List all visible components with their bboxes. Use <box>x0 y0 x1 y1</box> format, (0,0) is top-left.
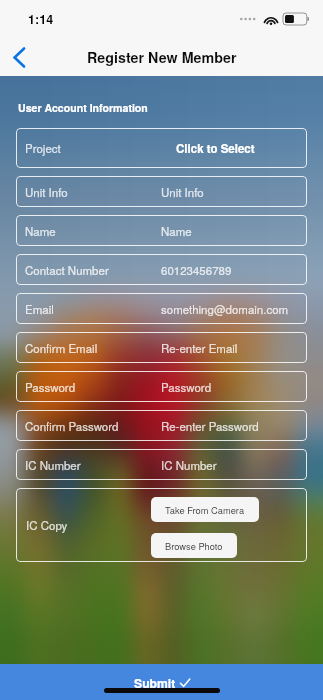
button[interactable]: Confirm Password <box>16 410 307 441</box>
button[interactable]: Password <box>16 371 307 402</box>
staticText: Name <box>161 223 192 239</box>
staticText: 1:14 <box>28 10 54 28</box>
staticText: Click to Select <box>176 140 255 156</box>
staticText: something@domain.com <box>161 301 289 317</box>
staticText: Re-enter Email <box>161 340 238 356</box>
staticText: Unit Info <box>161 184 204 200</box>
button[interactable]: Contact Number <box>16 254 307 285</box>
staticText: User Account Information <box>18 100 148 115</box>
staticText: Register New Member <box>87 47 237 67</box>
staticText: Contact Number <box>25 262 161 278</box>
staticText: 60123456789 <box>161 262 232 278</box>
staticText: Submit <box>134 674 176 691</box>
button[interactable]: IC Copy <box>16 488 307 562</box>
staticText: Project <box>25 140 161 156</box>
staticText: Re-enter Password <box>161 418 259 434</box>
button[interactable]: Name <box>16 215 307 246</box>
button[interactable]: Submit <box>0 664 323 700</box>
staticText: Browse Photo <box>165 539 223 552</box>
button[interactable]: Take From Camera <box>151 497 259 522</box>
button[interactable]: Unit Info <box>16 176 307 207</box>
staticText: Name <box>25 223 161 239</box>
button[interactable]: Email <box>16 293 307 324</box>
staticText: Email <box>25 301 161 317</box>
button[interactable]: Browse Photo <box>151 533 237 558</box>
button[interactable]: IC Number <box>16 449 307 480</box>
button[interactable]: Project <box>16 128 307 168</box>
button[interactable]: Back <box>0 38 38 76</box>
staticText: Password <box>25 379 161 395</box>
staticText: Confirm Email <box>25 340 161 356</box>
staticText: Take From Camera <box>165 503 245 516</box>
staticText: IC Number <box>25 457 161 473</box>
button[interactable]: Confirm Email <box>16 332 307 363</box>
staticText: IC Copy <box>26 517 68 533</box>
staticText: IC Number <box>161 457 217 473</box>
staticText: Confirm Password <box>25 418 161 434</box>
staticText: Password <box>161 379 212 395</box>
staticText: Unit Info <box>25 184 161 200</box>
